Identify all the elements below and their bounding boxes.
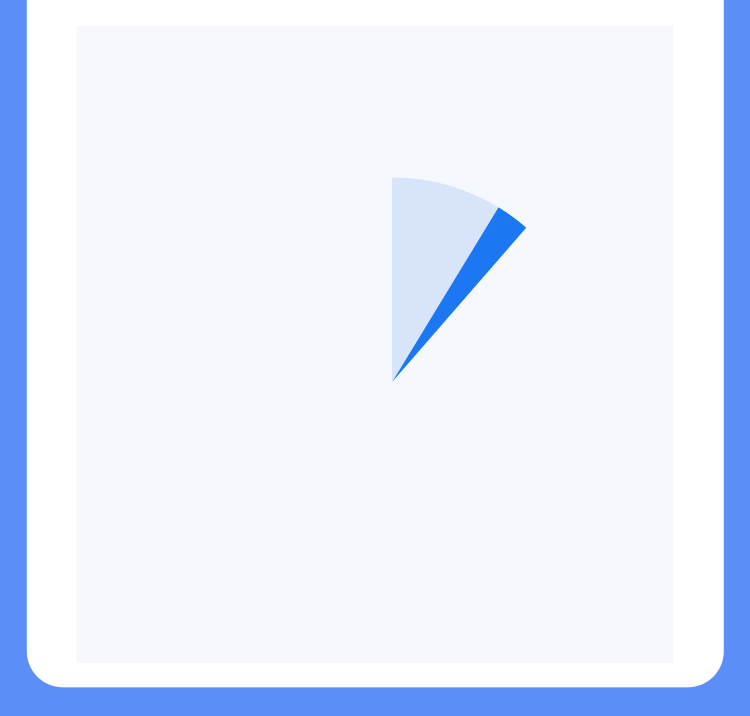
button[interactable]: Remaining share bbox=[392, 177, 499, 383]
button[interactable]: Highlighted share bbox=[392, 207, 527, 383]
